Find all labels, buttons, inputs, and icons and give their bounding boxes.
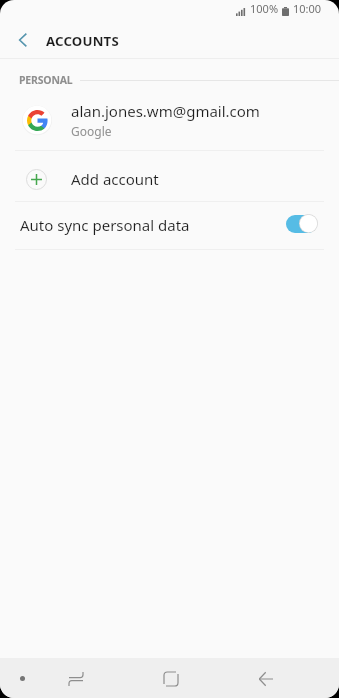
staticText: Add account — [71, 169, 159, 189]
staticText: PERSONAL — [19, 73, 73, 87]
staticText: ACCOUNTS — [46, 32, 119, 50]
button[interactable]: Back — [247, 660, 284, 697]
staticText: 10:00 — [293, 1, 322, 16]
button[interactable]: alan.jones.wm@gmail.com — [0, 94, 339, 150]
button[interactable]: Recents — [57, 660, 94, 697]
button[interactable]: Home — [152, 660, 189, 697]
button[interactable]: Navigate up — [7, 24, 39, 56]
button[interactable]: Add account — [0, 151, 339, 201]
staticText: Google — [71, 123, 112, 139]
button[interactable]: Hide navigation bar — [8, 664, 36, 692]
staticText: Auto sync personal data — [20, 215, 190, 235]
staticText: 100% — [250, 1, 279, 16]
staticText: alan.jones.wm@gmail.com — [71, 101, 260, 121]
button[interactable]: Auto sync personal data — [0, 202, 339, 249]
